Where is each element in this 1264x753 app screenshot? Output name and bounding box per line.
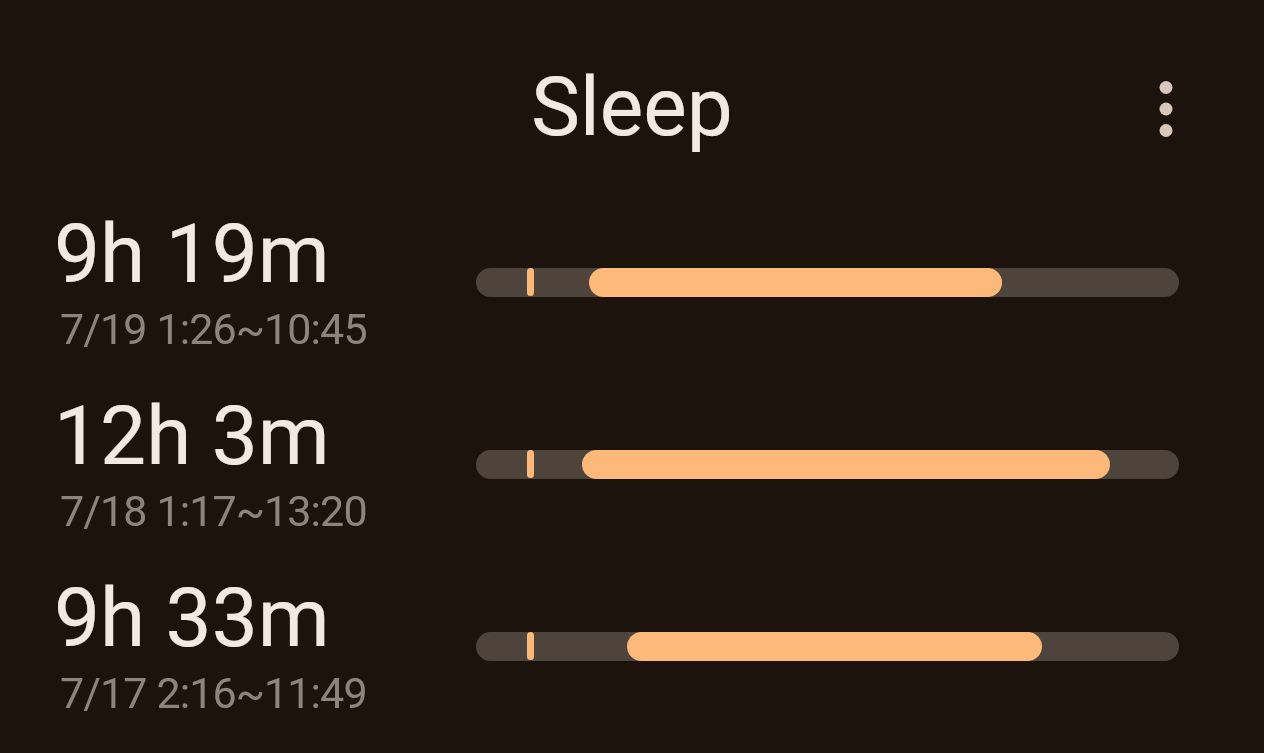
staticText: Sleep [0,59,1264,155]
button[interactable] [1136,48,1196,168]
staticText: 7/19 1:26~10:45 [60,304,367,354]
staticText: 9h 33m [54,570,330,666]
staticText: 12h 3m [54,388,330,484]
button[interactable]: 12h 3m [0,384,1264,544]
staticText: 7/18 1:17~13:20 [60,486,367,536]
staticText: 7/17 2:16~11:49 [60,668,367,718]
staticText: 9h 19m [54,206,330,302]
button[interactable]: 9h 33m [0,566,1264,726]
button[interactable]: 9h 19m [0,202,1264,362]
